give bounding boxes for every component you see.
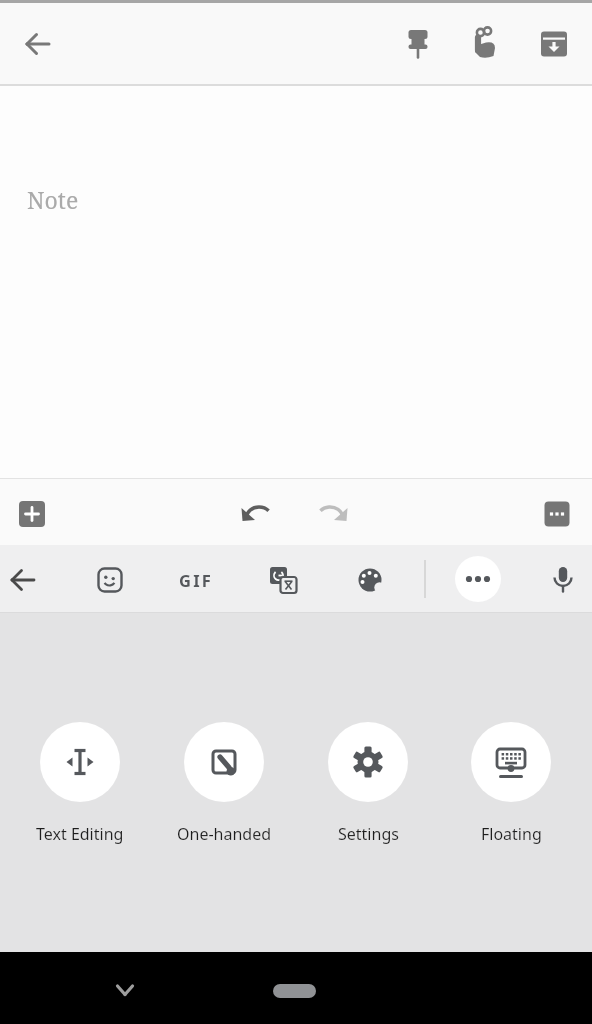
staticText: Text Editing xyxy=(36,823,124,845)
button[interactable] xyxy=(455,556,501,602)
button[interactable] xyxy=(86,556,134,604)
button[interactable] xyxy=(56,738,104,786)
button[interactable] xyxy=(394,20,442,68)
button[interactable] xyxy=(533,490,581,538)
button[interactable] xyxy=(184,722,264,802)
staticText: One-handed xyxy=(177,823,272,845)
staticText: GIF xyxy=(179,569,214,591)
staticText: Settings xyxy=(338,823,399,845)
button[interactable] xyxy=(8,490,56,538)
button[interactable] xyxy=(530,20,578,68)
button[interactable] xyxy=(539,556,587,604)
button[interactable] xyxy=(346,556,394,604)
button[interactable] xyxy=(235,490,283,538)
button[interactable] xyxy=(200,738,248,786)
button[interactable] xyxy=(487,738,535,786)
button[interactable] xyxy=(0,556,47,604)
button[interactable] xyxy=(306,490,354,538)
button[interactable] xyxy=(460,20,508,68)
button[interactable] xyxy=(101,966,149,1014)
button[interactable] xyxy=(471,722,551,802)
staticText: Floating xyxy=(481,823,542,845)
button[interactable] xyxy=(328,722,408,802)
button[interactable]: GIF xyxy=(172,556,220,604)
staticText: Note xyxy=(27,184,79,215)
button[interactable] xyxy=(14,20,62,68)
button[interactable] xyxy=(40,722,120,802)
button[interactable] xyxy=(259,556,307,604)
button[interactable] xyxy=(273,984,316,998)
button[interactable] xyxy=(344,738,392,786)
